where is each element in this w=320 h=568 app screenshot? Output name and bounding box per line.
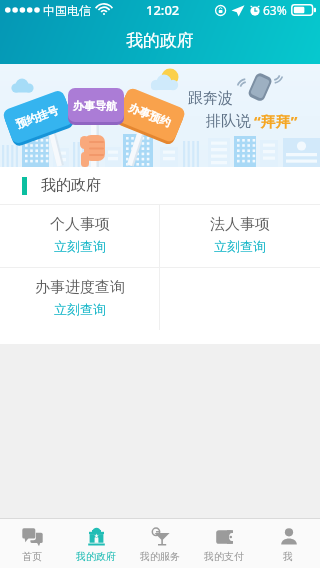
staticText: 办事进度查询 [35, 278, 125, 297]
staticText: 跟奔波 [188, 89, 233, 108]
button[interactable]: 个人事项 [0, 205, 159, 267]
staticText: 我 [283, 550, 293, 563]
staticText: 办事导航 [71, 99, 119, 113]
button[interactable]: 法人事项 [160, 205, 320, 267]
button[interactable]: 我的服务 [128, 519, 192, 568]
staticText: “拜拜” [254, 111, 298, 131]
staticText: 办事预约 [125, 99, 175, 130]
staticText: 12:02 [146, 1, 180, 19]
staticText: 立刻查询 [54, 238, 106, 254]
staticText: 立刻查询 [54, 301, 106, 317]
staticText: 首页 [22, 550, 42, 563]
button[interactable]: 我的支付 [192, 519, 256, 568]
button[interactable]: 我的政府 [64, 519, 128, 568]
staticText: 63% [263, 2, 287, 18]
button[interactable]: 我 [256, 519, 320, 568]
staticText: 我的政府 [41, 176, 101, 195]
staticText: 立刻查询 [214, 238, 266, 254]
staticText: 个人事项 [50, 215, 110, 234]
staticText: 法人事项 [210, 215, 270, 234]
staticText: 我的政府 [126, 30, 194, 51]
staticText: 预约挂号 [12, 102, 62, 132]
staticText: 我的支付 [204, 550, 244, 563]
button[interactable]: 办事进度查询 [0, 268, 159, 330]
button[interactable]: 首页 [0, 519, 64, 568]
staticText: 排队说 [206, 112, 251, 131]
staticText: 我的政府 [76, 550, 116, 563]
staticText: 我的服务 [140, 550, 180, 563]
staticText: 中国电信 [43, 3, 91, 18]
